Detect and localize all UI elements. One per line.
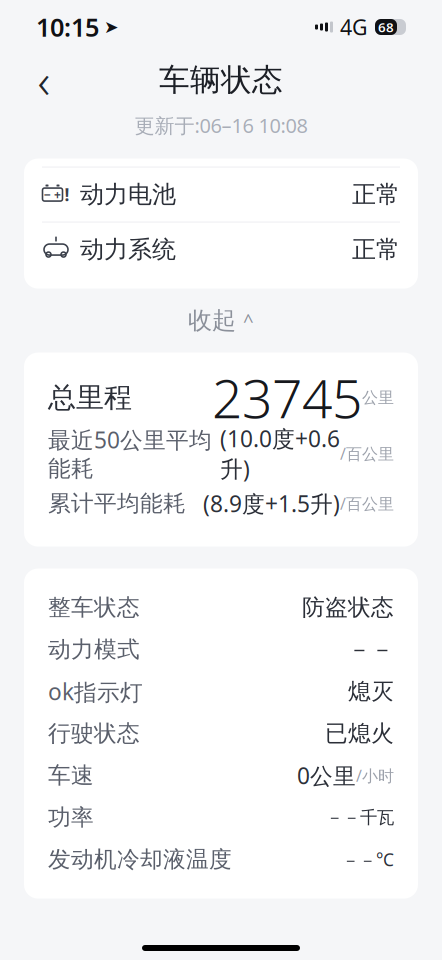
staticText: 公里	[362, 388, 394, 407]
staticText: 熄灭	[348, 678, 394, 705]
staticText: 23745	[212, 362, 362, 433]
staticText: 10:15	[36, 10, 99, 44]
staticText: 行驶状态	[48, 720, 140, 747]
staticText: －－°C	[342, 848, 394, 871]
staticText: /小时	[356, 765, 394, 786]
staticText: ^	[243, 308, 254, 333]
staticText: 4G	[340, 13, 368, 41]
staticText: (8.9度+1.5升)	[203, 488, 340, 519]
staticText: −	[44, 187, 51, 202]
staticText: 68	[378, 18, 394, 36]
staticText: 累计平均能耗	[48, 490, 186, 517]
staticText: 总里程	[48, 380, 132, 415]
staticText: 动力模式	[48, 636, 140, 663]
staticText: !	[64, 183, 69, 206]
staticText: /百公里	[340, 493, 394, 514]
staticText: 更新于:06–16 10:08	[134, 112, 307, 139]
staticText: 最近50公里平均能耗	[48, 425, 212, 482]
staticText: 收起	[188, 306, 236, 335]
button[interactable]: 收起	[0, 289, 442, 353]
staticText: 正常	[352, 180, 400, 209]
staticText: ➤	[104, 17, 119, 37]
staticText: 防盗状态	[302, 594, 394, 621]
staticText: 动力电池	[80, 180, 176, 209]
staticText: －－千瓦	[326, 807, 394, 828]
staticText: 发动机冷却液温度	[48, 846, 232, 873]
staticText: 正常	[352, 235, 400, 264]
staticText: ok指示灯	[48, 676, 143, 707]
staticText: －－	[348, 636, 394, 663]
staticText: 0公里	[297, 760, 356, 791]
staticText: (10.0度+0.6升)	[220, 423, 340, 484]
staticText: 已熄火	[325, 720, 394, 747]
staticText: 动力系统	[80, 235, 176, 264]
staticText: +	[54, 187, 61, 202]
staticText: 车速	[48, 762, 94, 789]
staticText: 车辆状态	[159, 61, 283, 99]
button[interactable]: 返回	[22, 58, 66, 102]
staticText: ‹	[37, 48, 50, 112]
staticText: 整车状态	[48, 594, 140, 621]
staticText: /百公里	[340, 443, 394, 464]
staticText: 功率	[48, 804, 94, 831]
